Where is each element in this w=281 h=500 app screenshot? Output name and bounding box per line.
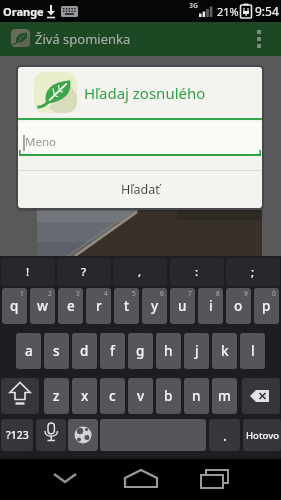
button[interactable] — [123, 462, 159, 496]
staticText: Orange — [3, 4, 44, 19]
button[interactable]: i — [198, 288, 223, 324]
staticText: Hotovo — [246, 429, 279, 442]
staticText: . — [223, 426, 227, 445]
button[interactable]: ! — [1, 258, 55, 286]
button[interactable] — [68, 419, 98, 451]
button[interactable] — [1, 378, 39, 414]
staticText: f — [110, 342, 115, 360]
button[interactable]: o — [226, 288, 251, 324]
button[interactable] — [198, 462, 234, 496]
staticText: b — [164, 387, 173, 405]
staticText: y — [151, 297, 159, 315]
staticText: e — [67, 297, 75, 315]
staticText: 2 — [48, 289, 52, 298]
staticText: Hľadať — [121, 181, 160, 198]
staticText: h — [164, 342, 173, 360]
staticText: , — [138, 264, 142, 280]
staticText: 8 — [216, 289, 220, 298]
button[interactable]: b — [156, 378, 181, 414]
staticText: 9:54 — [255, 3, 279, 19]
staticText: Meno — [25, 134, 56, 150]
button[interactable]: u — [170, 288, 195, 324]
button[interactable]: w — [30, 288, 55, 324]
staticText: 21% — [217, 4, 239, 19]
button[interactable]: g — [128, 333, 153, 369]
staticText: x — [81, 387, 89, 405]
button[interactable] — [36, 419, 66, 451]
button[interactable]: m — [212, 378, 237, 414]
staticText: z — [53, 387, 60, 405]
button[interactable]: e — [58, 288, 83, 324]
button[interactable]: h — [156, 333, 181, 369]
button[interactable]: v — [128, 378, 153, 414]
staticText: Hľadaj zosnulého — [84, 83, 206, 103]
button[interactable]: f — [100, 333, 125, 369]
staticText: 0 — [272, 289, 276, 298]
button[interactable]: Hotovo — [243, 419, 281, 451]
button[interactable]: l — [240, 333, 265, 369]
button[interactable]: d — [72, 333, 97, 369]
staticText: 1 — [20, 289, 24, 298]
button[interactable] — [47, 462, 83, 496]
staticText: v — [137, 387, 145, 405]
staticText: k — [221, 342, 229, 360]
button[interactable]: r — [86, 288, 111, 324]
staticText: r — [96, 297, 102, 315]
staticText: q — [10, 297, 19, 315]
button[interactable]: j — [184, 333, 209, 369]
button[interactable]: z — [44, 378, 69, 414]
staticText: 3G — [189, 1, 199, 11]
staticText: 7 — [188, 289, 192, 298]
staticText: Živá spomienka — [35, 30, 131, 48]
button[interactable]: t — [114, 288, 139, 324]
staticText: m — [218, 387, 231, 405]
staticText: : — [195, 264, 199, 280]
staticText: 5 — [132, 289, 136, 298]
button[interactable]: n — [184, 378, 209, 414]
staticText: 4 — [104, 289, 108, 298]
staticText: n — [192, 387, 201, 405]
staticText: ? — [81, 264, 87, 280]
staticText: w — [37, 297, 48, 315]
staticText: a — [25, 342, 33, 360]
staticText: ; — [251, 264, 255, 280]
button[interactable]: c — [100, 378, 125, 414]
button[interactable] — [0, 22, 281, 56]
staticText: j — [195, 342, 199, 360]
staticText: 6 — [160, 289, 164, 298]
button[interactable]: a — [16, 333, 41, 369]
button[interactable]: y — [142, 288, 167, 324]
staticText: u — [178, 297, 187, 315]
staticText: c — [109, 387, 116, 405]
button[interactable]: p — [254, 288, 279, 324]
button[interactable] — [19, 122, 261, 154]
staticText: i — [209, 297, 213, 315]
button[interactable]: Hľadať — [18, 171, 262, 208]
staticText: l — [251, 342, 255, 360]
button[interactable]: x — [72, 378, 97, 414]
staticText: ! — [26, 264, 30, 280]
button[interactable] — [242, 378, 280, 414]
staticText: p — [262, 297, 271, 315]
button[interactable]: q — [2, 288, 27, 324]
button[interactable]: ?123 — [1, 419, 33, 451]
staticText: 3 — [76, 289, 80, 298]
button[interactable]: . — [209, 419, 240, 451]
staticText: ?123 — [6, 428, 29, 442]
button[interactable]: s — [44, 333, 69, 369]
button[interactable]: ? — [57, 258, 111, 286]
staticText: s — [53, 342, 60, 360]
button[interactable]: : — [170, 258, 224, 286]
button[interactable]: , — [113, 258, 167, 286]
button[interactable]: k — [212, 333, 237, 369]
button[interactable] — [254, 28, 264, 52]
staticText: 9 — [244, 289, 248, 298]
staticText: o — [234, 297, 243, 315]
staticText: t — [124, 297, 130, 315]
staticText: g — [136, 342, 145, 360]
staticText: d — [80, 342, 89, 360]
button[interactable]: ; — [226, 258, 280, 286]
